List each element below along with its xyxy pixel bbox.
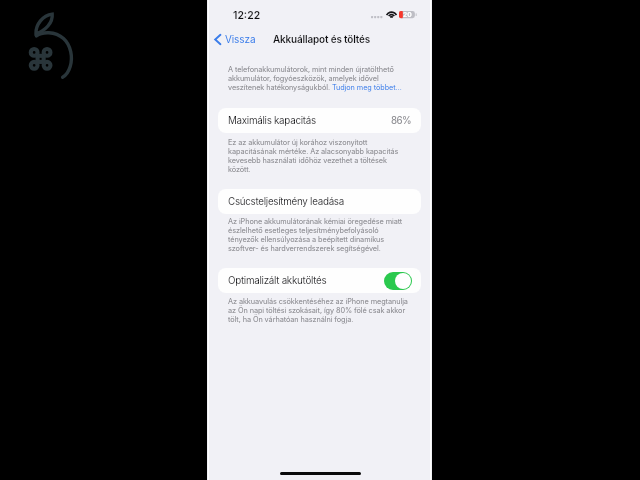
staticText: 12:22 xyxy=(233,9,261,22)
button[interactable]: Optimalizált akkutöltés kapcsoló xyxy=(384,272,412,290)
staticText: Csúcsteljesítmény leadása xyxy=(228,196,344,208)
staticText: Optimalizált akkutöltés xyxy=(228,275,327,287)
staticText: 86% xyxy=(391,115,412,127)
button[interactable]: Maximális kapacitás xyxy=(218,108,421,133)
button[interactable]: Csúcsteljesítmény leadása xyxy=(218,189,421,214)
staticText: Az iPhone akkumulátorának kémiai öregedé… xyxy=(228,217,411,253)
button[interactable]: Optimalizált akkutöltés xyxy=(218,268,421,293)
staticText: Maximális kapacitás xyxy=(228,115,316,127)
staticText: A telefonakkumulátorok, mint minden újra… xyxy=(228,65,411,92)
staticText: Az akkuavulás csökkentéséhez az iPhone m… xyxy=(228,297,411,324)
button[interactable]: Vissza xyxy=(212,31,258,47)
staticText: Ez az akkumulátor új korához viszonyítot… xyxy=(228,138,411,174)
staticText: Vissza xyxy=(225,33,256,45)
staticText: 20 xyxy=(403,11,412,18)
staticText: Akkuállapot és töltés xyxy=(273,33,371,45)
